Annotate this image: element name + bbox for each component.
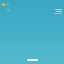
button[interactable]: App badge [2,3,5,6]
button[interactable] [54,9,62,14]
button[interactable]: Primary action [27,59,38,61]
